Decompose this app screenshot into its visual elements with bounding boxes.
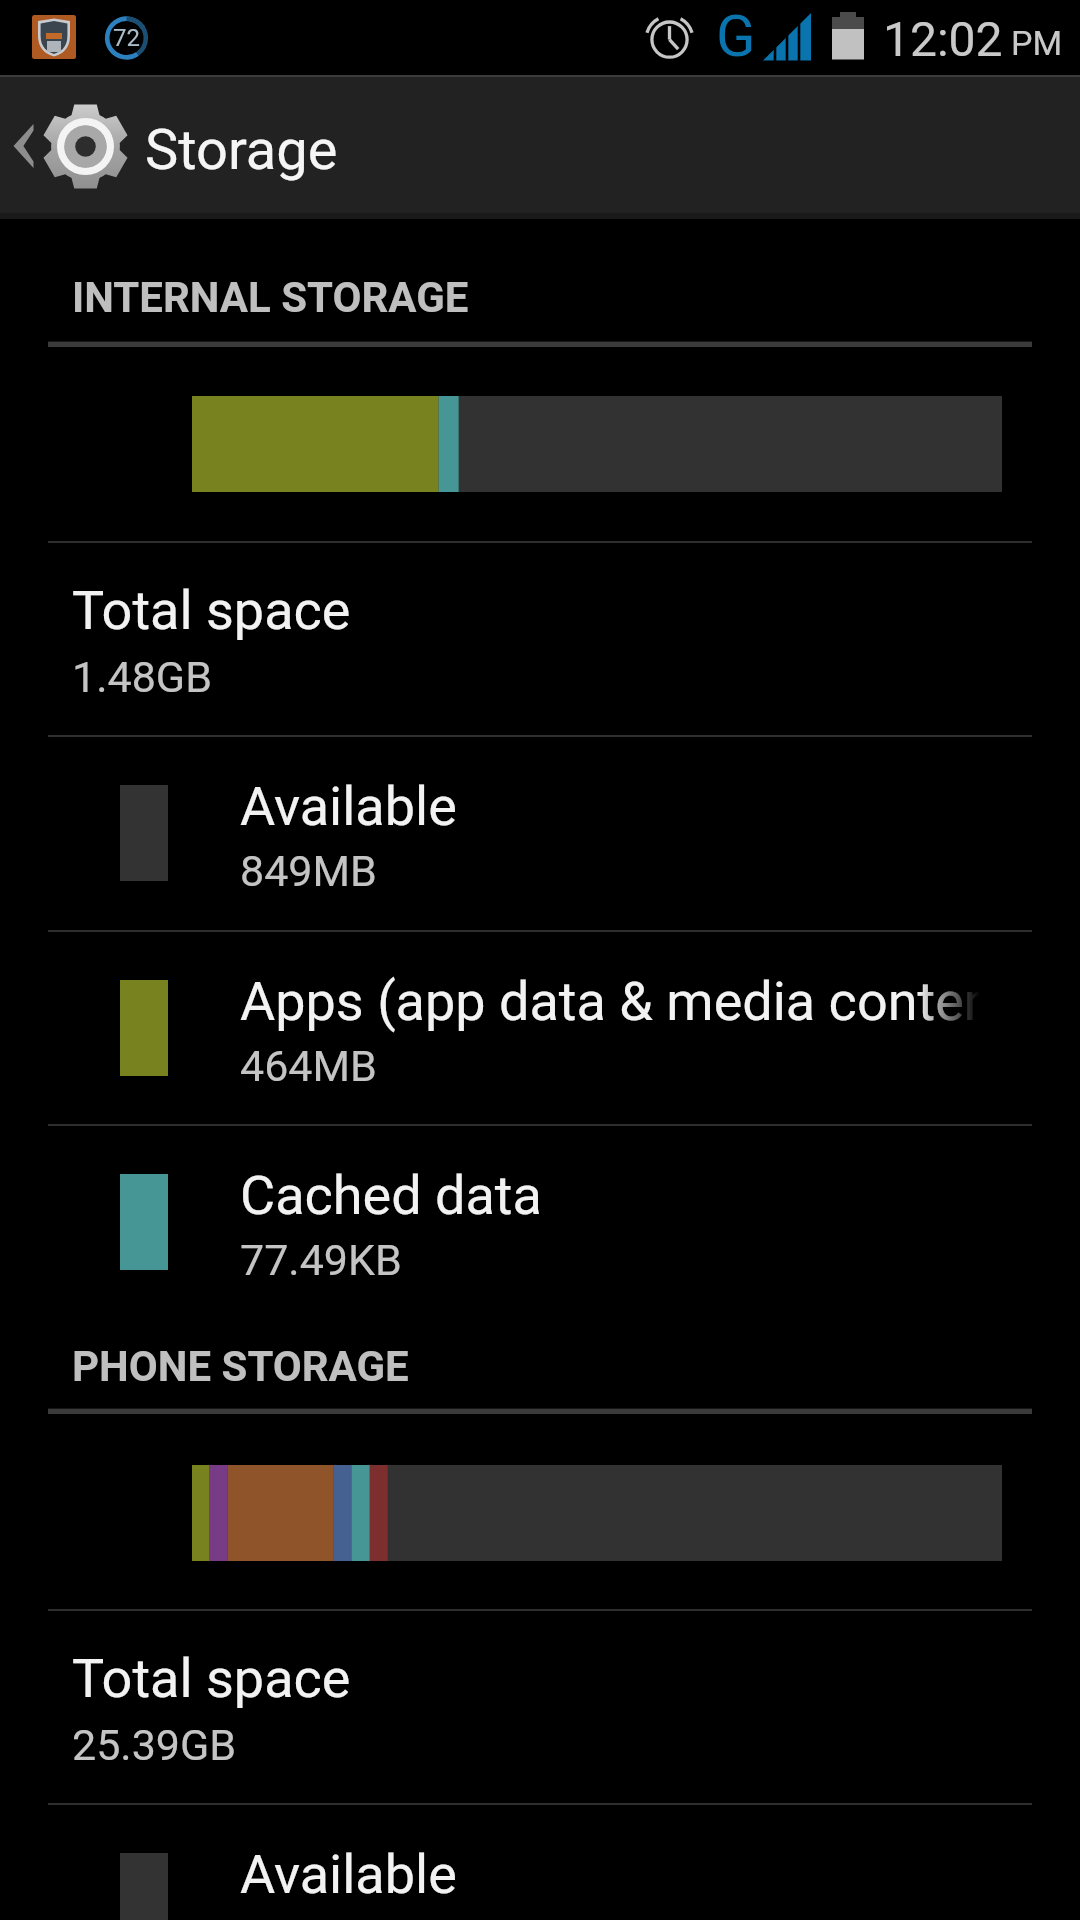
staticText: Apps (app data & media content) [240, 970, 980, 1033]
staticText: PHONE STORAGE [72, 1342, 409, 1391]
staticText: Cached data [240, 1164, 542, 1227]
staticText: G [716, 2, 756, 70]
staticText: 77.49KB [240, 1235, 402, 1285]
staticText: 25.39GB [72, 1720, 237, 1770]
staticText: 12:02 [883, 11, 1003, 67]
staticText: 72 [113, 24, 140, 52]
staticText: Total space [72, 579, 351, 642]
staticText: Available [240, 1843, 457, 1906]
button[interactable]: Available [0, 1803, 1080, 1920]
staticText: Total space [72, 1647, 351, 1710]
button[interactable]: Total space [0, 541, 1080, 735]
button[interactable]: Apps (app data & media content) [0, 930, 1080, 1124]
button[interactable]: Available [0, 735, 1080, 930]
staticText: Storage [145, 117, 338, 183]
staticText: Available [240, 775, 457, 838]
staticText: PM [1011, 23, 1063, 63]
button[interactable]: Cached data [0, 1124, 1080, 1318]
staticText: 464MB [240, 1041, 377, 1091]
staticText: 1.48GB [72, 652, 212, 702]
staticText: 849MB [240, 846, 377, 896]
button[interactable]: Navigate up [0, 75, 1080, 213]
staticText: INTERNAL STORAGE [72, 273, 469, 322]
button[interactable]: Total space [0, 1609, 1080, 1803]
